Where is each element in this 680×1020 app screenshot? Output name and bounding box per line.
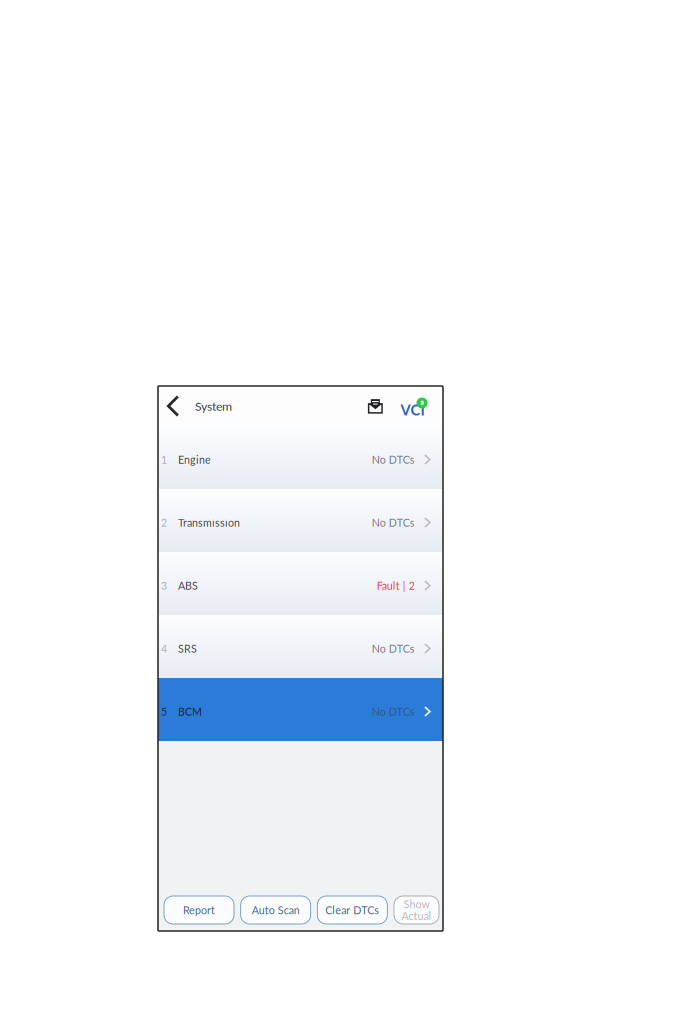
button[interactable]: Clear DTCs: [317, 896, 387, 924]
staticText: 4: [161, 642, 167, 655]
staticText: VCI: [400, 401, 424, 418]
button[interactable]: VCI connection: [399, 386, 443, 426]
button[interactable]: Show: [394, 896, 439, 924]
button[interactable]: Auto Scan: [241, 896, 311, 924]
staticText: System: [195, 399, 232, 413]
button[interactable]: Back: [158, 386, 188, 426]
staticText: 5: [161, 705, 167, 718]
staticText: No DTCs: [372, 516, 415, 529]
staticText: No DTCs: [372, 453, 415, 466]
staticText: Actual: [401, 909, 431, 922]
staticText: Fault | 2: [377, 579, 415, 592]
button[interactable]: 1: [158, 426, 443, 489]
button[interactable]: 3: [158, 552, 443, 615]
staticText: 2: [161, 516, 167, 529]
staticText: Show: [403, 898, 429, 910]
staticText: Report: [183, 904, 215, 916]
staticText: BCM: [178, 705, 202, 718]
staticText: SRS: [178, 642, 197, 655]
staticText: Auto Scan: [252, 904, 300, 916]
staticText: 1: [161, 453, 167, 466]
button[interactable]: Messages: [364, 386, 399, 426]
staticText: No DTCs: [372, 705, 415, 718]
staticText: No DTCs: [372, 642, 415, 655]
staticText: Transmission: [178, 516, 240, 529]
button[interactable]: Report: [164, 896, 234, 924]
staticText: 3: [161, 579, 167, 592]
button[interactable]: 4: [158, 615, 443, 678]
button[interactable]: 5: [158, 678, 443, 741]
staticText: ABS: [178, 579, 198, 592]
staticText: Engine: [178, 453, 211, 466]
staticText: Clear DTCs: [325, 904, 379, 916]
button[interactable]: 2: [158, 489, 443, 552]
